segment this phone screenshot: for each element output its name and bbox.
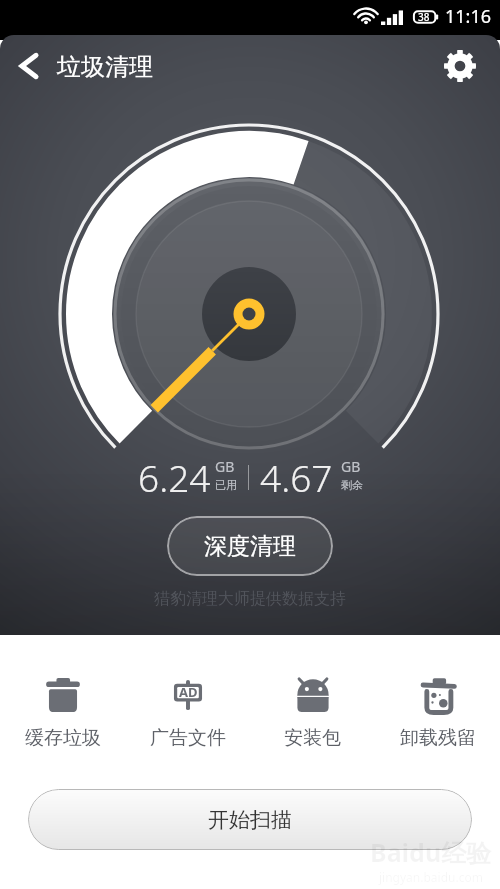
staticText: 垃圾清理 xyxy=(57,52,153,82)
staticText: Baidu经验 xyxy=(370,835,492,869)
staticText: 38 xyxy=(418,10,430,24)
staticText: 4.67 xyxy=(260,452,333,502)
staticText: 深度清理 xyxy=(204,532,296,561)
staticText: 安装包 xyxy=(284,726,341,750)
button[interactable]: 缓存垃圾 xyxy=(0,677,125,750)
staticText: 开始扫描 xyxy=(208,807,292,833)
staticText: AD xyxy=(179,683,198,701)
staticText: 广告文件 xyxy=(150,726,226,750)
staticText: 卸载残留 xyxy=(400,726,476,750)
staticText: GB xyxy=(215,457,235,476)
staticText: 剩余 xyxy=(341,478,363,492)
staticText: 猎豹清理大师提供数据支持 xyxy=(154,589,346,609)
button[interactable]: 安装包 xyxy=(250,677,375,750)
button[interactable]: AD xyxy=(125,677,250,750)
button[interactable]: 卸载残留 xyxy=(375,677,500,750)
button[interactable]: Back xyxy=(0,36,58,96)
staticText: 11:16 xyxy=(445,4,492,29)
button[interactable]: 开始扫描 xyxy=(28,789,472,850)
staticText: 6.24 xyxy=(138,452,211,502)
button[interactable]: Settings xyxy=(430,36,490,96)
staticText: 缓存垃圾 xyxy=(25,726,101,750)
button[interactable]: 深度清理 xyxy=(167,516,333,576)
staticText: 已用 xyxy=(215,478,237,492)
staticText: GB xyxy=(341,457,361,476)
